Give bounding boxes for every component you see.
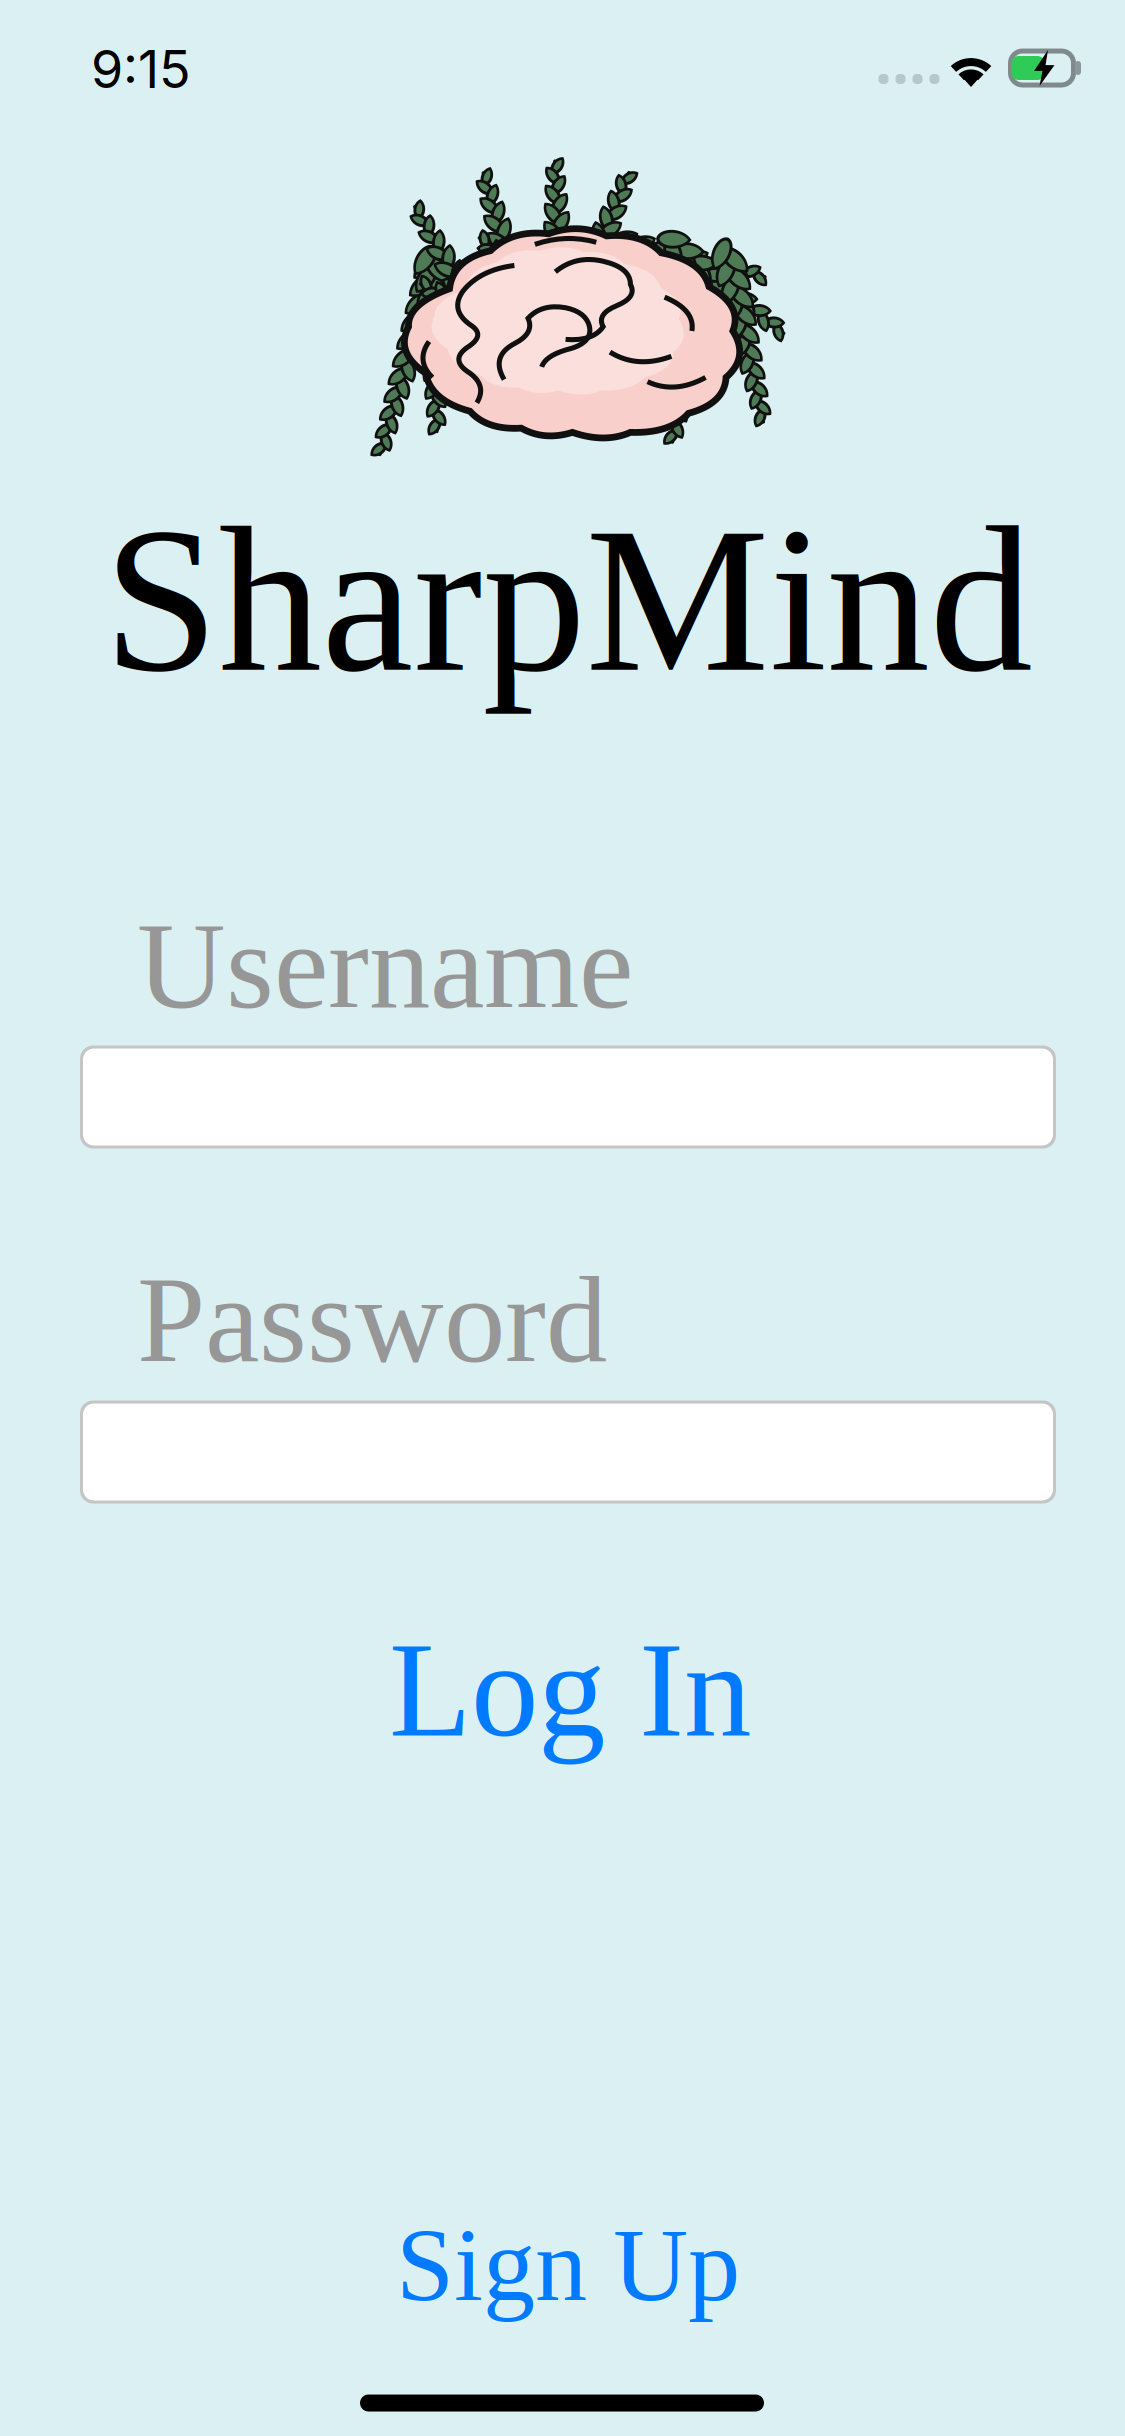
- staticText: Password: [137, 1252, 607, 1388]
- staticText: SharpMind: [103, 486, 1032, 714]
- staticText: Log In: [389, 1615, 751, 1764]
- staticText: Username: [137, 898, 633, 1034]
- staticText: Sign Up: [396, 2207, 740, 2323]
- staticText: 9:15: [91, 37, 191, 100]
- button[interactable]: Log In: [389, 1615, 751, 1764]
- button[interactable]: Sign Up: [396, 2207, 740, 2323]
